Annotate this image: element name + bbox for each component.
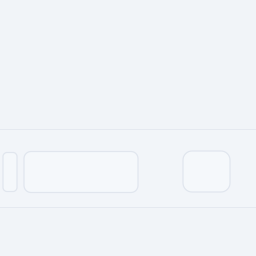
button[interactable]: Sidebar bbox=[3, 145, 17, 191]
button[interactable]: Tabs bbox=[183, 145, 230, 192]
button[interactable]: Search bbox=[24, 144, 138, 192]
